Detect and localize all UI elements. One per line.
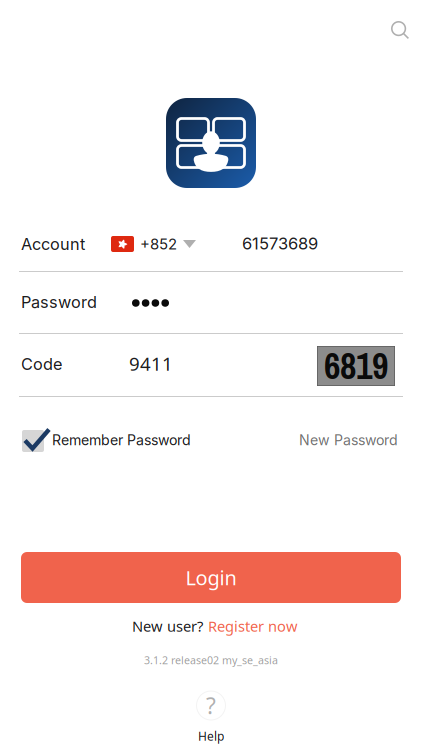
staticText: New user? (132, 616, 203, 636)
button[interactable]: Login (21, 552, 401, 603)
button[interactable]: Country code +852 (111, 233, 196, 255)
staticText: 9411 (129, 351, 173, 376)
button[interactable]: ? (196, 691, 225, 743)
staticText: Help (198, 728, 224, 744)
staticText: Password (21, 292, 97, 312)
button[interactable]: New Password (299, 432, 398, 448)
staticText: New Password (299, 431, 398, 448)
staticText: Login (185, 564, 236, 591)
button[interactable]: Search (378, 8, 422, 52)
staticText: Code (21, 354, 62, 374)
button[interactable]: Register now (208, 616, 298, 636)
staticText: ? (206, 690, 216, 720)
staticText: 6819 (324, 342, 388, 390)
staticText: 61573689 (242, 233, 318, 253)
staticText: 3.1.2 release02 my_se_asia (144, 653, 278, 667)
staticText: Register now (208, 616, 298, 636)
button[interactable]: Refresh verification code (317, 346, 395, 386)
staticText: +852 (140, 235, 177, 253)
staticText: Account (21, 234, 85, 254)
button[interactable]: Remember Password (22, 428, 191, 452)
staticText: Remember Password (52, 431, 191, 448)
